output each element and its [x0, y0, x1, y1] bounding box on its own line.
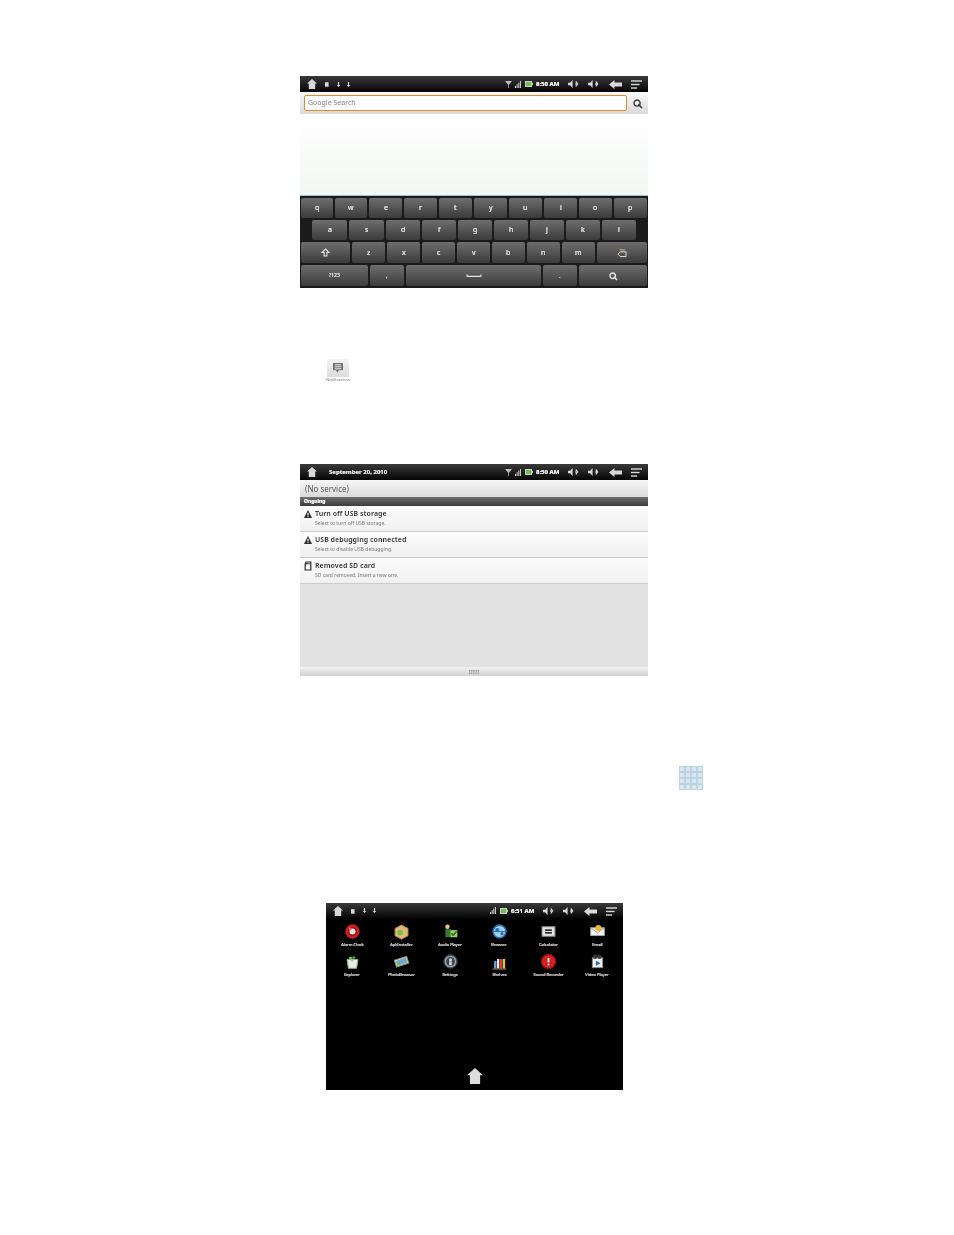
button[interactable]: Volume down — [567, 467, 580, 477]
button[interactable]: r — [404, 198, 437, 218]
staticText: x — [402, 248, 406, 258]
button[interactable]: i — [544, 198, 577, 218]
staticText: Select to turn off USB storage. — [315, 520, 386, 527]
button[interactable] — [597, 242, 647, 263]
staticText: n — [541, 248, 546, 258]
button[interactable]: , — [370, 265, 404, 286]
button[interactable]: k — [566, 220, 600, 240]
button[interactable]: m — [562, 242, 595, 263]
button[interactable]: Notifications — [320, 359, 356, 382]
staticText: Notifications — [326, 377, 350, 382]
staticText: e — [384, 203, 388, 213]
staticText: l — [618, 225, 620, 235]
button[interactable]: Email — [574, 923, 620, 947]
button[interactable]: Back — [583, 906, 597, 916]
staticText: Alarm Clock — [341, 942, 364, 947]
button[interactable]: Settings — [427, 953, 473, 977]
button[interactable] — [406, 265, 541, 286]
staticText: c — [437, 248, 441, 258]
staticText: . — [559, 272, 561, 280]
button[interactable]: e — [369, 198, 402, 218]
staticText: u — [523, 203, 528, 213]
button[interactable]: Turn off USB storage — [300, 506, 648, 531]
button[interactable]: Menu — [630, 79, 643, 89]
button[interactable]: s — [349, 220, 384, 240]
staticText: k — [581, 225, 585, 235]
button[interactable]: Volume down — [567, 79, 580, 89]
staticText: Calculator — [539, 942, 558, 947]
button[interactable]: Removed SD card — [300, 558, 648, 583]
button[interactable]: w — [335, 198, 367, 218]
staticText: (No service) — [305, 483, 349, 494]
staticText: Email — [592, 942, 603, 947]
button[interactable]: Audio Player — [427, 923, 473, 947]
button[interactable]: Alarm Clock — [329, 923, 375, 947]
button[interactable]: Shelves — [476, 953, 522, 977]
button[interactable]: u — [509, 198, 542, 218]
button[interactable]: v — [457, 242, 490, 263]
button[interactable]: t — [439, 198, 472, 218]
button[interactable]: o — [579, 198, 612, 218]
button[interactable]: Search — [630, 96, 644, 110]
button[interactable]: b — [492, 242, 525, 263]
staticText: q — [315, 203, 320, 213]
button[interactable]: Home — [305, 77, 319, 91]
staticText: y — [489, 203, 493, 213]
button[interactable]: Video Player — [574, 953, 620, 977]
button[interactable]: Volume up — [587, 467, 600, 477]
staticText: i — [560, 203, 562, 213]
button[interactable]: n — [527, 242, 560, 263]
button[interactable]: Back — [608, 79, 622, 89]
button[interactable]: h — [494, 220, 528, 240]
button[interactable]: . — [543, 265, 577, 286]
button[interactable]: q — [301, 198, 333, 218]
staticText: g — [473, 225, 478, 235]
button[interactable]: p — [614, 198, 647, 218]
button[interactable]: Back — [608, 467, 622, 477]
button[interactable]: z — [352, 242, 385, 263]
button[interactable]: f — [422, 220, 456, 240]
staticText: USB debugging connected — [315, 535, 407, 545]
staticText: ApkInstaller — [390, 942, 413, 947]
button[interactable]: g — [458, 220, 492, 240]
button[interactable]: Volume down — [542, 906, 555, 916]
button[interactable]: Explorer — [329, 953, 375, 977]
button[interactable]: Sound Recorder — [525, 953, 571, 977]
staticText: p — [628, 203, 633, 213]
button[interactable]: y — [474, 198, 507, 218]
button[interactable]: Browser — [476, 923, 522, 947]
staticText: v — [472, 248, 476, 258]
staticText: ?123 — [329, 272, 340, 279]
button[interactable]: l — [602, 220, 636, 240]
button[interactable]: PhotoBrowser — [378, 953, 424, 977]
staticText: Sound Recorder — [533, 972, 564, 977]
staticText: r — [419, 203, 422, 213]
button[interactable] — [579, 265, 647, 286]
button[interactable]: Menu — [630, 467, 643, 477]
button[interactable]: x — [387, 242, 420, 263]
staticText: September 20, 2010 — [329, 468, 388, 476]
button[interactable]: Menu — [605, 906, 618, 916]
button[interactable] — [301, 242, 350, 263]
button[interactable]: Volume up — [587, 79, 600, 89]
staticText: Google Search — [308, 98, 356, 108]
staticText: Removed SD card — [315, 561, 376, 571]
button[interactable]: d — [386, 220, 420, 240]
button[interactable]: Home — [331, 904, 345, 918]
staticText: Turn off USB storage — [315, 509, 387, 519]
button[interactable]: Calculator — [525, 923, 571, 947]
button[interactable]: Home — [305, 465, 319, 479]
button[interactable]: USB debugging connected — [300, 532, 648, 557]
button[interactable]: Home — [326, 1062, 623, 1090]
button[interactable]: a — [312, 220, 347, 240]
button[interactable]: ApkInstaller — [378, 923, 424, 947]
button[interactable]: Volume up — [562, 906, 575, 916]
button[interactable]: j — [530, 220, 564, 240]
staticText: d — [401, 225, 406, 235]
button[interactable]: Google Search — [304, 95, 627, 111]
button[interactable]: ?123 — [301, 265, 368, 286]
button[interactable]: c — [422, 242, 455, 263]
staticText: h — [509, 225, 514, 235]
staticText: o — [593, 203, 598, 213]
staticText: Video Player — [585, 972, 609, 977]
